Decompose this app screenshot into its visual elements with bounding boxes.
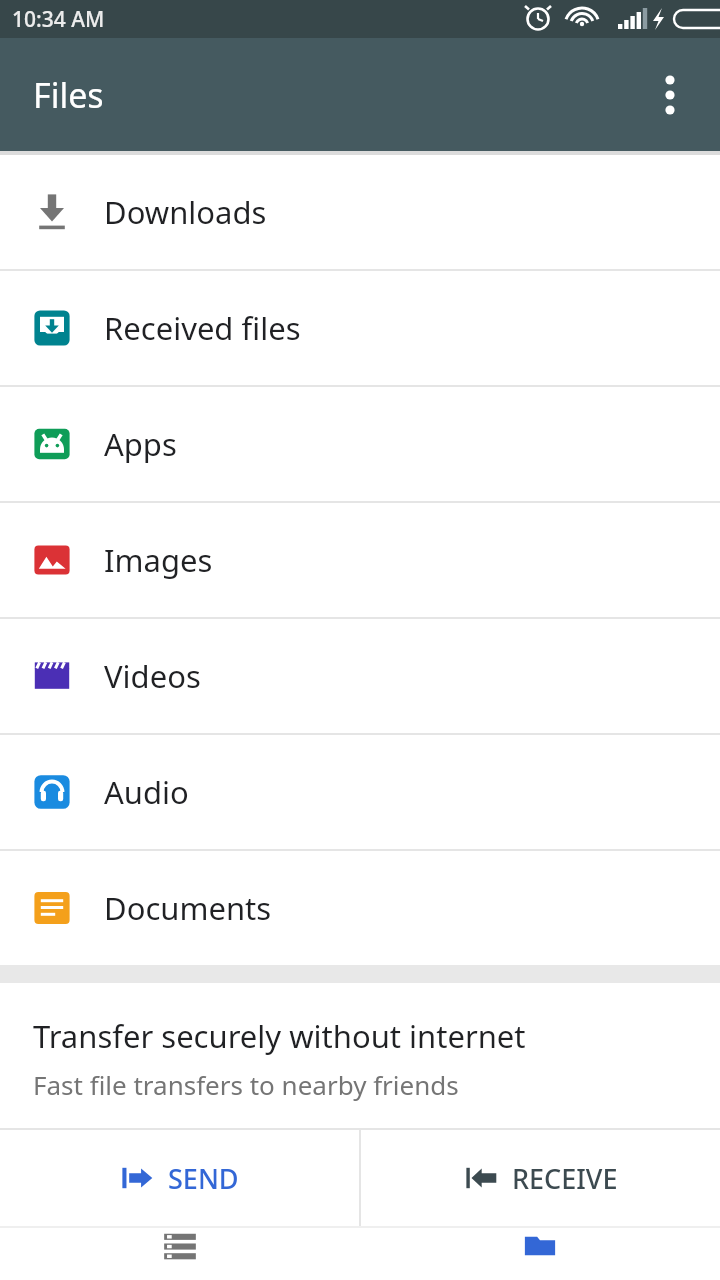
staticText: 10:34 AM: [12, 5, 105, 34]
button[interactable]: Apps: [0, 387, 720, 501]
staticText: Fast file transfers to nearby friends: [33, 1067, 459, 1102]
staticText: Downloads: [104, 191, 267, 233]
button[interactable]: Downloads: [0, 155, 720, 269]
button[interactable]: Files: [360, 1228, 720, 1280]
button[interactable]: Documents: [0, 851, 720, 965]
staticText: Apps: [104, 423, 177, 465]
staticText: SEND: [168, 1160, 239, 1197]
button[interactable]: RECEIVE: [361, 1130, 720, 1226]
button[interactable]: Images: [0, 503, 720, 617]
staticText: Received files: [104, 307, 301, 349]
button[interactable]: More options: [642, 67, 698, 123]
button[interactable]: Audio: [0, 735, 720, 849]
staticText: Images: [104, 539, 213, 581]
staticText: Documents: [104, 887, 272, 929]
staticText: Videos: [104, 655, 201, 697]
staticText: Transfer securely without internet: [33, 1015, 526, 1057]
staticText: Audio: [104, 771, 189, 813]
button[interactable]: SEND: [0, 1130, 359, 1226]
button[interactable]: Received files: [0, 271, 720, 385]
button[interactable]: Videos: [0, 619, 720, 733]
button[interactable]: Storage: [0, 1228, 360, 1280]
staticText: RECEIVE: [512, 1160, 618, 1197]
staticText: Files: [33, 72, 104, 118]
